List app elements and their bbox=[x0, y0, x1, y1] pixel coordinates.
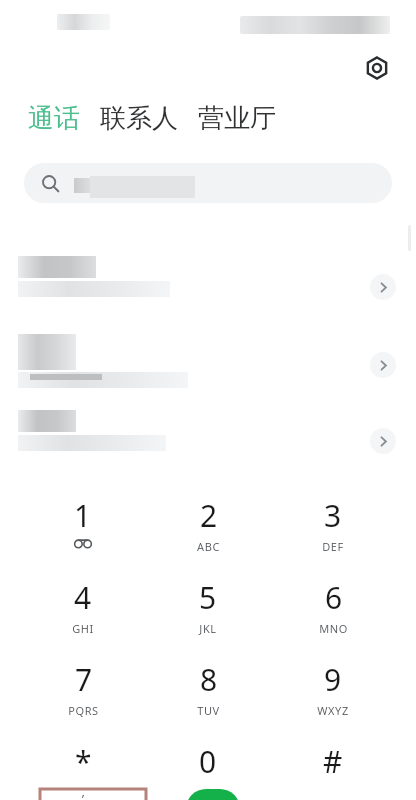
button[interactable]: 营业厅 bbox=[196, 100, 278, 137]
staticText: 通话 bbox=[28, 102, 80, 135]
staticText: # bbox=[323, 741, 343, 782]
staticText: 2 bbox=[200, 495, 218, 536]
staticText: 3 bbox=[324, 495, 342, 536]
staticText: 8 bbox=[200, 659, 218, 700]
button[interactable]: 1 bbox=[41, 495, 125, 555]
staticText: 9 bbox=[324, 659, 342, 700]
staticText: 5 bbox=[199, 577, 217, 618]
button[interactable]: 7 bbox=[41, 659, 125, 719]
staticText: 营业厅 bbox=[198, 102, 276, 135]
staticText: TUV bbox=[197, 703, 220, 718]
button[interactable]: 4 bbox=[41, 577, 125, 637]
button[interactable]: Open bbox=[370, 274, 396, 300]
staticText: GHI bbox=[72, 621, 94, 636]
staticText: * bbox=[75, 741, 92, 782]
staticText: 6 bbox=[325, 577, 343, 618]
button[interactable]: Open bbox=[370, 428, 396, 454]
button[interactable]: 6 bbox=[291, 577, 375, 637]
button[interactable]: 通话 bbox=[26, 100, 82, 137]
button[interactable]: # bbox=[291, 741, 375, 800]
staticText: DEF bbox=[322, 539, 344, 554]
button[interactable]: 9 bbox=[291, 659, 375, 719]
staticText: MNO bbox=[319, 621, 348, 636]
button[interactable]: 联系人 bbox=[98, 100, 180, 137]
staticText: 1 bbox=[74, 495, 92, 536]
button[interactable]: Call bbox=[186, 789, 240, 800]
button[interactable]: Open bbox=[0, 404, 416, 478]
button[interactable]: 5 bbox=[166, 577, 250, 637]
button[interactable] bbox=[40, 789, 146, 800]
staticText: + bbox=[204, 782, 213, 800]
button[interactable]: Open bbox=[0, 250, 416, 324]
button[interactable]: 0 bbox=[166, 741, 250, 800]
staticText: 7 bbox=[75, 659, 93, 700]
button[interactable]: * bbox=[41, 741, 125, 800]
staticText: PQRS bbox=[68, 703, 99, 718]
staticText: JKL bbox=[199, 621, 217, 636]
button[interactable]: 2 bbox=[166, 495, 250, 555]
staticText: WXYZ bbox=[317, 703, 349, 718]
button[interactable]: Settings bbox=[356, 47, 398, 89]
button[interactable] bbox=[24, 163, 392, 203]
staticText: 0 bbox=[199, 741, 217, 782]
button[interactable]: Open bbox=[0, 328, 416, 402]
button[interactable]: Open bbox=[370, 352, 396, 378]
staticText: , bbox=[81, 782, 86, 800]
staticText: 4 bbox=[74, 577, 92, 618]
staticText: ABC bbox=[197, 539, 220, 554]
button[interactable]: 3 bbox=[291, 495, 375, 555]
staticText: 联系人 bbox=[100, 102, 178, 135]
button[interactable]: 8 bbox=[166, 659, 250, 719]
